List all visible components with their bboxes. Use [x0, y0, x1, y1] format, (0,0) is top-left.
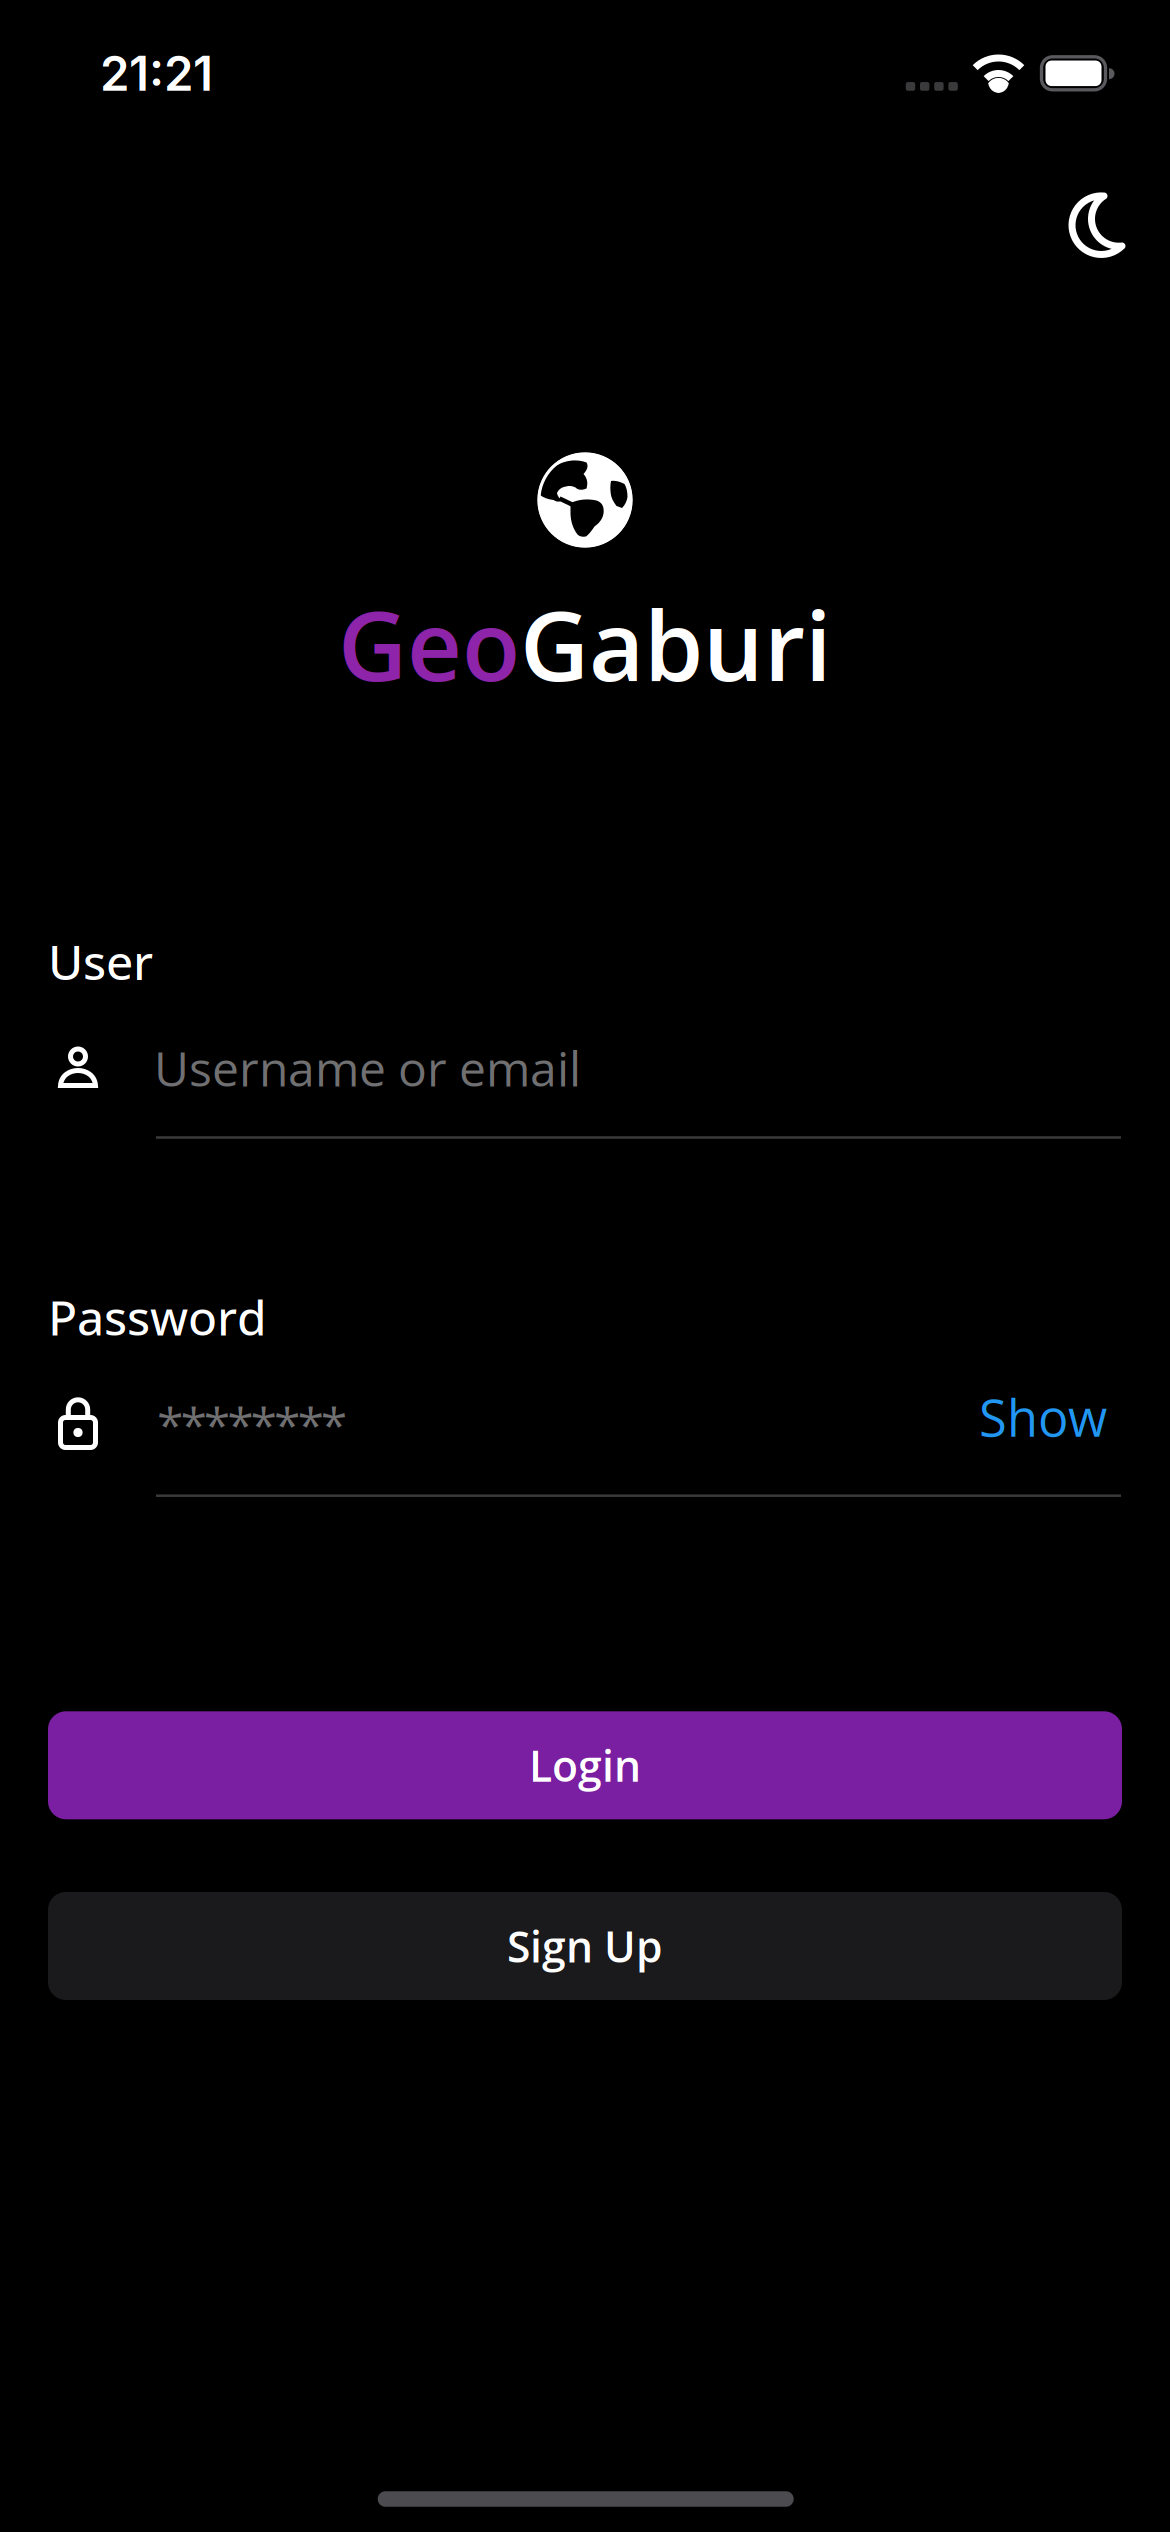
staticText: Sign Up — [507, 1917, 663, 1975]
staticText: Show — [979, 1382, 1107, 1451]
button[interactable]: Toggle dark mode — [1053, 179, 1143, 269]
staticText: Username or email — [154, 1035, 581, 1101]
button[interactable]: Sign Up — [48, 1892, 1122, 2000]
staticText: User — [48, 929, 153, 994]
staticText: Gaburi — [520, 579, 832, 709]
button[interactable]: Show — [979, 1382, 1107, 1451]
staticText: Login — [529, 1736, 641, 1794]
button[interactable]: Login — [48, 1711, 1122, 1819]
staticText: Geo — [338, 579, 520, 709]
staticText: Password — [48, 1284, 267, 1350]
staticText: 21:21 — [100, 45, 213, 102]
staticText: ******** — [157, 1391, 347, 1457]
